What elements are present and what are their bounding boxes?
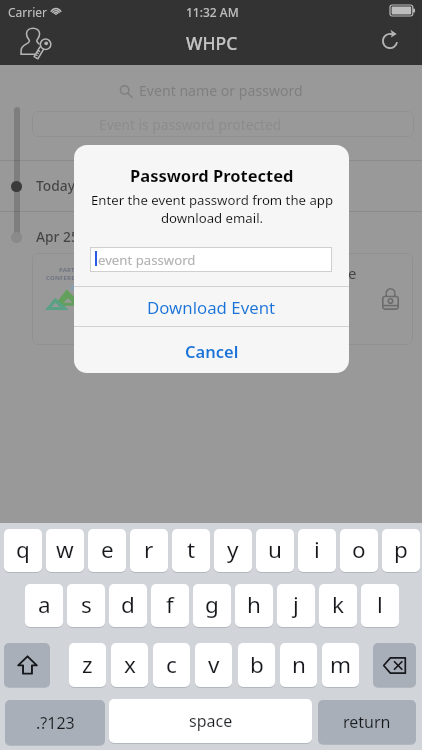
button[interactable]: l (361, 584, 399, 627)
staticText: c (166, 649, 177, 680)
staticText: e (101, 534, 114, 565)
button[interactable]: Backspace (373, 643, 416, 687)
staticText: g (205, 589, 219, 620)
button[interactable]: x (111, 643, 148, 687)
button[interactable]: e (88, 529, 126, 572)
staticText: k (332, 589, 345, 620)
button[interactable]: d (109, 584, 147, 627)
staticText: 11:32 AM (186, 4, 239, 20)
button[interactable]: r (130, 529, 168, 572)
button[interactable]: event password (90, 247, 332, 272)
button[interactable]: f (151, 584, 189, 627)
button[interactable]: Cancel (74, 327, 349, 373)
staticText: PARTNER (59, 266, 88, 274)
button[interactable]: i (298, 529, 336, 572)
staticText: m (330, 649, 352, 680)
button[interactable]: o (340, 529, 378, 572)
button[interactable]: Shift (4, 643, 50, 687)
staticText: y (227, 534, 239, 565)
button[interactable]: Download Event (74, 287, 349, 325)
staticText: Today (36, 176, 75, 195)
button[interactable]: Refresh (366, 23, 422, 65)
staticText: x (124, 649, 136, 680)
button[interactable]: n (280, 643, 317, 687)
staticText: w (56, 534, 74, 565)
button[interactable]: Sign in (6, 23, 66, 65)
button[interactable]: v (195, 643, 232, 687)
staticText: r (144, 534, 154, 565)
staticText: Event name or password (139, 81, 303, 100)
staticText: Carrier (8, 4, 48, 20)
button[interactable]: .?123 (5, 700, 105, 745)
button[interactable]: space (109, 699, 312, 743)
staticText: o (352, 534, 366, 565)
staticText: Cancel (185, 340, 239, 362)
staticText: v (208, 649, 220, 680)
staticText: Event is password protected (99, 115, 282, 134)
staticText: Apr 25 (36, 227, 79, 246)
staticText: Download Event (147, 296, 276, 319)
staticText: l (377, 589, 383, 620)
staticText: d (121, 589, 135, 620)
staticText: .?123 (36, 712, 75, 734)
button[interactable]: j (277, 584, 315, 627)
staticText: n (292, 649, 306, 680)
staticText: p (394, 534, 408, 565)
staticText: Password Protected (130, 164, 294, 186)
staticText: i (314, 534, 320, 565)
button[interactable]: t (172, 529, 210, 572)
button[interactable]: y (214, 529, 252, 572)
staticText: event password (98, 251, 196, 269)
staticText: j (293, 589, 299, 620)
staticText: space (189, 710, 233, 732)
staticText: Enter the event password from the app do… (88, 191, 336, 227)
staticText: f (166, 589, 174, 620)
staticText: q (16, 534, 30, 565)
button[interactable]: z (69, 643, 106, 687)
button[interactable]: b (238, 643, 275, 687)
button[interactable]: h (235, 584, 273, 627)
button[interactable]: w (46, 529, 84, 572)
button[interactable]: u (256, 529, 294, 572)
button[interactable]: Event is password protected (32, 111, 414, 137)
staticText: CONFERENCE (46, 274, 88, 282)
staticText: t (187, 534, 196, 565)
button[interactable]: m (322, 643, 359, 687)
staticText: a (38, 589, 51, 620)
button[interactable]: k (319, 584, 357, 627)
staticText: WHPC (186, 31, 238, 55)
button[interactable]: s (67, 584, 105, 627)
staticText: b (250, 649, 264, 680)
button[interactable]: return (318, 700, 416, 744)
staticText: z (82, 649, 93, 680)
button[interactable] (32, 253, 413, 345)
staticText: s (81, 589, 92, 620)
button[interactable]: c (153, 643, 190, 687)
staticText: h (247, 589, 261, 620)
staticText: u (268, 534, 282, 565)
button[interactable]: p (382, 529, 420, 572)
staticText: e (348, 263, 357, 283)
staticText: 2018 (70, 282, 88, 292)
button[interactable]: g (193, 584, 231, 627)
staticText: return (343, 711, 391, 733)
button[interactable]: a (25, 584, 63, 627)
button[interactable]: q (4, 529, 42, 572)
